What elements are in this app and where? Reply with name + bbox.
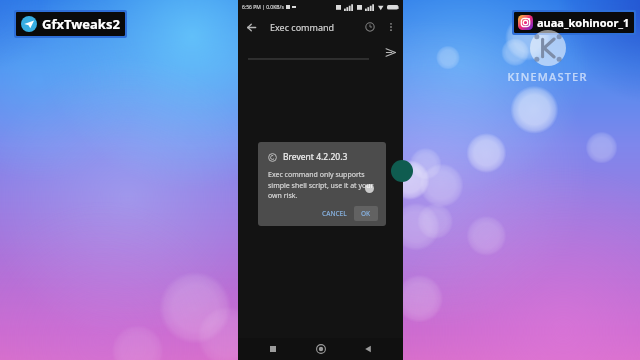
button[interactable]: OK xyxy=(354,206,378,221)
button[interactable]: Back xyxy=(355,338,381,360)
staticText: KINEMASTER xyxy=(507,69,588,84)
button[interactable]: Recents xyxy=(260,338,286,360)
button[interactable]: Send xyxy=(381,43,399,61)
staticText: CANCEL xyxy=(322,209,347,218)
staticText: Brevent 4.2.20.3 xyxy=(283,151,348,163)
button[interactable]: More options xyxy=(381,17,401,37)
button[interactable]: Back xyxy=(238,14,264,40)
button[interactable]: History xyxy=(359,16,381,38)
staticText: OK xyxy=(361,209,371,218)
button[interactable]: Run command xyxy=(391,160,413,182)
staticText: 36% xyxy=(389,4,399,11)
staticText: 6:56 PM | 0.0KB/s xyxy=(242,4,284,11)
staticText: Exec command xyxy=(270,21,335,33)
staticText: GfxTweaks2 xyxy=(42,15,120,33)
button[interactable]: CANCEL xyxy=(317,206,352,221)
staticText: Exec command only supports simple shell … xyxy=(268,170,378,200)
button[interactable]: Home xyxy=(308,338,334,360)
staticText: auaa_kohinoor_1 xyxy=(537,15,630,30)
